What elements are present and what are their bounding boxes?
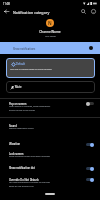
button[interactable]: Sound: [0, 122, 100, 134]
staticText: Pop on screen: [9, 102, 27, 106]
button[interactable]: Back: [1, 6, 12, 17]
button[interactable]: Help: [88, 6, 99, 17]
staticText: Let these notifications continue to inte…: [9, 181, 50, 187]
staticText: Default notification sound: [9, 127, 34, 130]
staticText: Default: [16, 62, 25, 66]
staticText: Sound: [9, 124, 17, 128]
button[interactable]: Default: [6, 58, 95, 78]
staticText: Lock screen: [9, 152, 24, 156]
staticText: ATD-Tester: [45, 35, 56, 38]
staticText: Show notification dot: [9, 166, 35, 170]
button[interactable]: Show notification dot: [0, 164, 100, 173]
staticText: Vibration: [9, 142, 21, 146]
button[interactable]: Show notifications: [0, 42, 100, 54]
staticText: Show sensitive content only when unlocke…: [9, 155, 50, 158]
button[interactable]: Search: [78, 6, 89, 17]
staticText: N: [48, 20, 52, 26]
button[interactable]: Mute: [6, 81, 95, 93]
button[interactable]: Vibration: [0, 140, 100, 149]
staticText: Notification category: [13, 10, 50, 15]
button[interactable]: Lock screen: [0, 150, 100, 162]
staticText: Mute: [15, 85, 22, 89]
button[interactable]: Pop on screen: [0, 100, 100, 114]
button[interactable]: Override Do Not Disturb: [0, 176, 100, 190]
staticText: 11:08: [3, 2, 10, 6]
staticText: When device is unlocked, show notificati…: [9, 105, 51, 111]
staticText: ChannelName: [39, 30, 61, 34]
staticText: Show notifications: [13, 47, 36, 51]
staticText: May ring or vibrate based on phone setti…: [10, 68, 52, 71]
staticText: Override Do Not Disturb: [9, 178, 39, 182]
